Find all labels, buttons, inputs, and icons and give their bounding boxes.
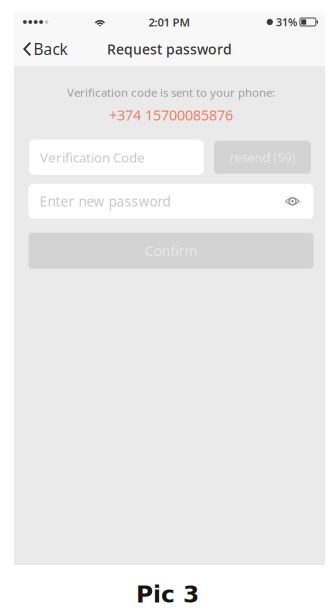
staticText: Confirm <box>144 241 197 260</box>
staticText: 31% <box>276 15 297 29</box>
staticText: Enter new password <box>39 192 170 211</box>
staticText: +374 15700085876 <box>109 105 233 125</box>
button[interactable]: Back <box>14 32 78 66</box>
button[interactable]: Show password <box>282 191 302 211</box>
staticText: 2:01 PM <box>148 14 190 30</box>
staticText: Back <box>33 39 67 59</box>
staticText: Pic 3 <box>136 581 199 608</box>
staticText: Verification Code <box>40 148 145 166</box>
staticText: Request password <box>107 39 232 59</box>
staticText: resend (59) <box>229 149 295 166</box>
staticText: Verification code is sent to your phone: <box>67 85 275 100</box>
button[interactable]: resend (59) <box>214 141 311 174</box>
